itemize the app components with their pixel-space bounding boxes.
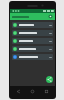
button[interactable]: Recents — [44, 89, 49, 94]
button[interactable] — [12, 30, 53, 36]
button[interactable]: Home — [30, 89, 35, 94]
button[interactable] — [12, 54, 53, 60]
button[interactable]: Back — [16, 89, 21, 94]
button[interactable] — [12, 38, 53, 44]
button[interactable]: Share — [46, 76, 53, 83]
button[interactable]: More options — [48, 14, 53, 19]
button[interactable] — [12, 22, 53, 28]
button[interactable] — [12, 46, 53, 52]
